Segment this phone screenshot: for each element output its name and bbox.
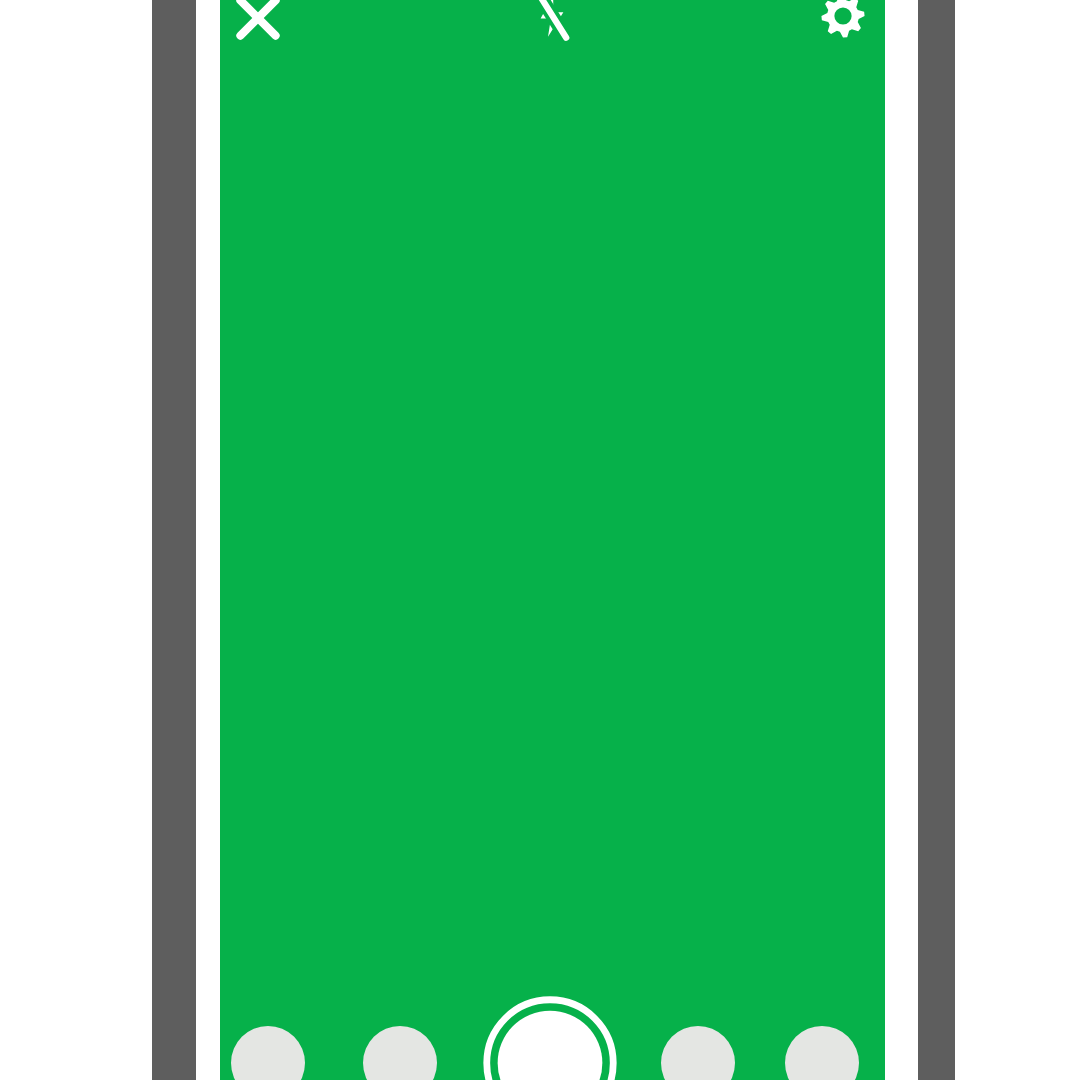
button[interactable]: Close: [214, 0, 302, 62]
button[interactable]: Photo mode 1: [231, 1026, 305, 1080]
button[interactable]: Photo mode 4: [785, 1026, 859, 1080]
button[interactable]: Settings: [799, 0, 887, 60]
button[interactable]: Shutter: [482, 995, 618, 1080]
button[interactable]: Flash off: [508, 0, 596, 60]
button[interactable]: Photo mode 3: [661, 1026, 735, 1080]
button[interactable]: Photo mode 2: [363, 1026, 437, 1080]
